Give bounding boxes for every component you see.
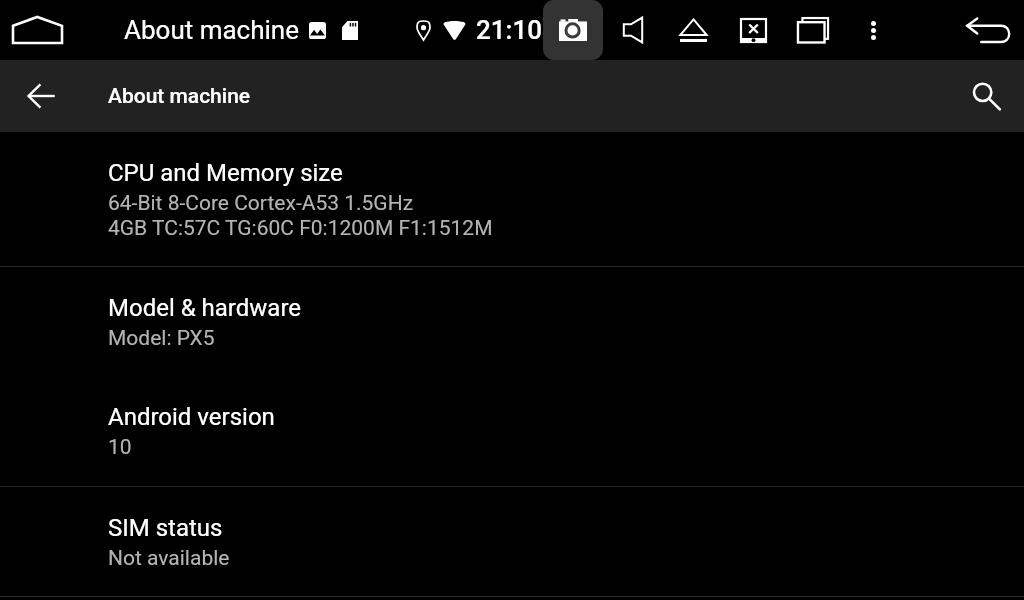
- button[interactable]: Back: [958, 0, 1018, 60]
- button[interactable]: Screen off: [723, 0, 783, 60]
- button[interactable]: Model & hardware: [0, 267, 1024, 376]
- staticText: 10: [108, 435, 132, 460]
- button[interactable]: More options: [843, 0, 903, 60]
- button[interactable]: Navigate up: [14, 69, 68, 123]
- staticText: SIM status: [108, 514, 223, 542]
- staticText: About machine: [124, 15, 300, 45]
- button[interactable]: Home: [9, 0, 65, 60]
- staticText: CPU and Memory size: [108, 159, 343, 187]
- button[interactable]: SIM status: [0, 487, 1024, 596]
- button[interactable]: Search: [960, 69, 1014, 123]
- button[interactable]: Android version: [0, 376, 1024, 486]
- staticText: Android version: [108, 403, 275, 431]
- staticText: 64-Bit 8-Core Cortex-A53 1.5GHz: [108, 191, 414, 216]
- staticText: Model: PX5: [108, 326, 215, 351]
- staticText: 21:10: [476, 15, 542, 45]
- button[interactable]: Volume: [603, 0, 663, 60]
- staticText: Not available: [108, 546, 230, 571]
- staticText: Model & hardware: [108, 294, 302, 322]
- button[interactable]: Recents: [783, 0, 843, 60]
- staticText: About machine: [108, 84, 251, 109]
- button[interactable]: Eject: [663, 0, 723, 60]
- button[interactable]: Screenshot: [543, 0, 603, 60]
- button[interactable]: CPU and Memory size: [0, 132, 1024, 266]
- staticText: 4GB TC:57C TG:60C F0:1200M F1:1512M: [108, 216, 493, 241]
